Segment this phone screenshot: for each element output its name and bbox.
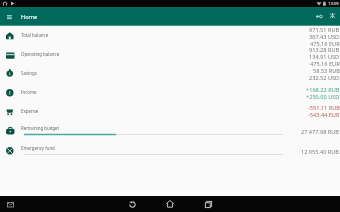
staticText: 12 055.40 RUB bbox=[301, 148, 340, 156]
button[interactable] bbox=[0, 87, 340, 106]
button[interactable] bbox=[163, 197, 177, 211]
button[interactable] bbox=[201, 197, 215, 211]
button[interactable] bbox=[0, 26, 340, 47]
staticText: Expense bbox=[21, 108, 39, 114]
button[interactable] bbox=[0, 148, 340, 171]
staticText: 913.28 RUB bbox=[309, 46, 340, 54]
staticText: Remaining budget bbox=[21, 125, 60, 131]
staticText: 475.16 EUR bbox=[310, 60, 340, 68]
staticText: Home bbox=[21, 13, 38, 21]
staticText: +168.22 RUB bbox=[306, 86, 340, 94]
staticText: 971.51 RUB bbox=[309, 26, 340, 34]
staticText: +250.00 USD bbox=[306, 93, 340, 101]
staticText: Operating balance bbox=[21, 51, 60, 57]
button[interactable] bbox=[315, 13, 323, 21]
staticText: 27 477.98 RUB bbox=[301, 128, 340, 136]
staticText: Income bbox=[21, 89, 37, 95]
staticText: -543.44 EUR bbox=[308, 111, 340, 119]
button[interactable] bbox=[0, 47, 340, 68]
button[interactable] bbox=[0, 106, 340, 125]
button[interactable] bbox=[329, 12, 337, 20]
button[interactable] bbox=[125, 197, 139, 211]
staticText: 58.53 RUB bbox=[313, 67, 340, 75]
staticText: 367.43 USD bbox=[309, 33, 340, 41]
staticText: -551.11 RUB bbox=[308, 104, 340, 112]
staticText: 475.16 EUR bbox=[310, 40, 340, 48]
staticText: Emergency fund bbox=[21, 145, 55, 151]
button[interactable] bbox=[3, 10, 16, 23]
staticText: 13:09 bbox=[328, 1, 339, 7]
button[interactable] bbox=[0, 68, 340, 87]
staticText: Savings bbox=[21, 70, 37, 76]
staticText: 134.91 USD bbox=[309, 53, 340, 61]
staticText: 232.52 USD bbox=[309, 74, 340, 82]
staticText: Total balance bbox=[21, 32, 49, 38]
button[interactable] bbox=[0, 125, 340, 148]
